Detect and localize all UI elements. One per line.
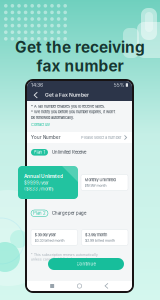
staticText: $99.99/ year: [24, 180, 49, 185]
staticText: Get the receiving: [15, 38, 145, 57]
staticText: be renewed automatically.: [31, 115, 74, 120]
staticText: Get a Fax Number: [45, 92, 89, 98]
staticText: $3.33 billed month: [34, 238, 64, 242]
staticText: Plan 2: [33, 211, 46, 216]
staticText: $39.99/ year: [34, 232, 55, 237]
button[interactable]: Your Number: [27, 132, 132, 143]
staticText: Monthly Unlimited: [84, 177, 115, 182]
staticText: fax number: [36, 57, 123, 75]
staticText: unless cancelled 24h before it ends.: [31, 257, 90, 261]
staticText: $3.99/ month: [85, 232, 107, 237]
staticText: * This subscription renews automatically: [31, 253, 98, 257]
staticText: Annual Unlimited: [24, 173, 63, 179]
staticText: Charge per page: [52, 211, 86, 216]
button[interactable]: Continue: [48, 258, 124, 270]
button[interactable]: Annual Unlimited: [18, 166, 78, 199]
staticText: ($8.33 / month): [24, 187, 54, 192]
staticText: 55%: [114, 82, 125, 88]
staticText: 14:36: [31, 82, 43, 88]
staticText: Unlimited Receive: [52, 150, 86, 155]
button[interactable]: Monthly Unlimited: [81, 174, 128, 190]
button[interactable]: Back: [30, 90, 41, 99]
button[interactable]: Contact us!: [31, 122, 50, 127]
staticText: Your Number: [31, 135, 61, 140]
button[interactable]: $39.99/ year: [31, 229, 77, 245]
staticText: * We notify you before you number expire…: [31, 110, 115, 114]
staticText: Continue: [76, 261, 95, 267]
staticText: Contact us!: [31, 122, 50, 127]
staticText: Please select a number: [81, 135, 122, 140]
staticText: * A fax number enables you to receive fa…: [31, 104, 105, 109]
staticText: $3.99 billed month: [85, 238, 115, 242]
staticText: Plan 1: [33, 150, 45, 155]
staticText: $19.99/ month: [84, 183, 106, 187]
button[interactable]: $3.99/ month: [81, 229, 128, 245]
